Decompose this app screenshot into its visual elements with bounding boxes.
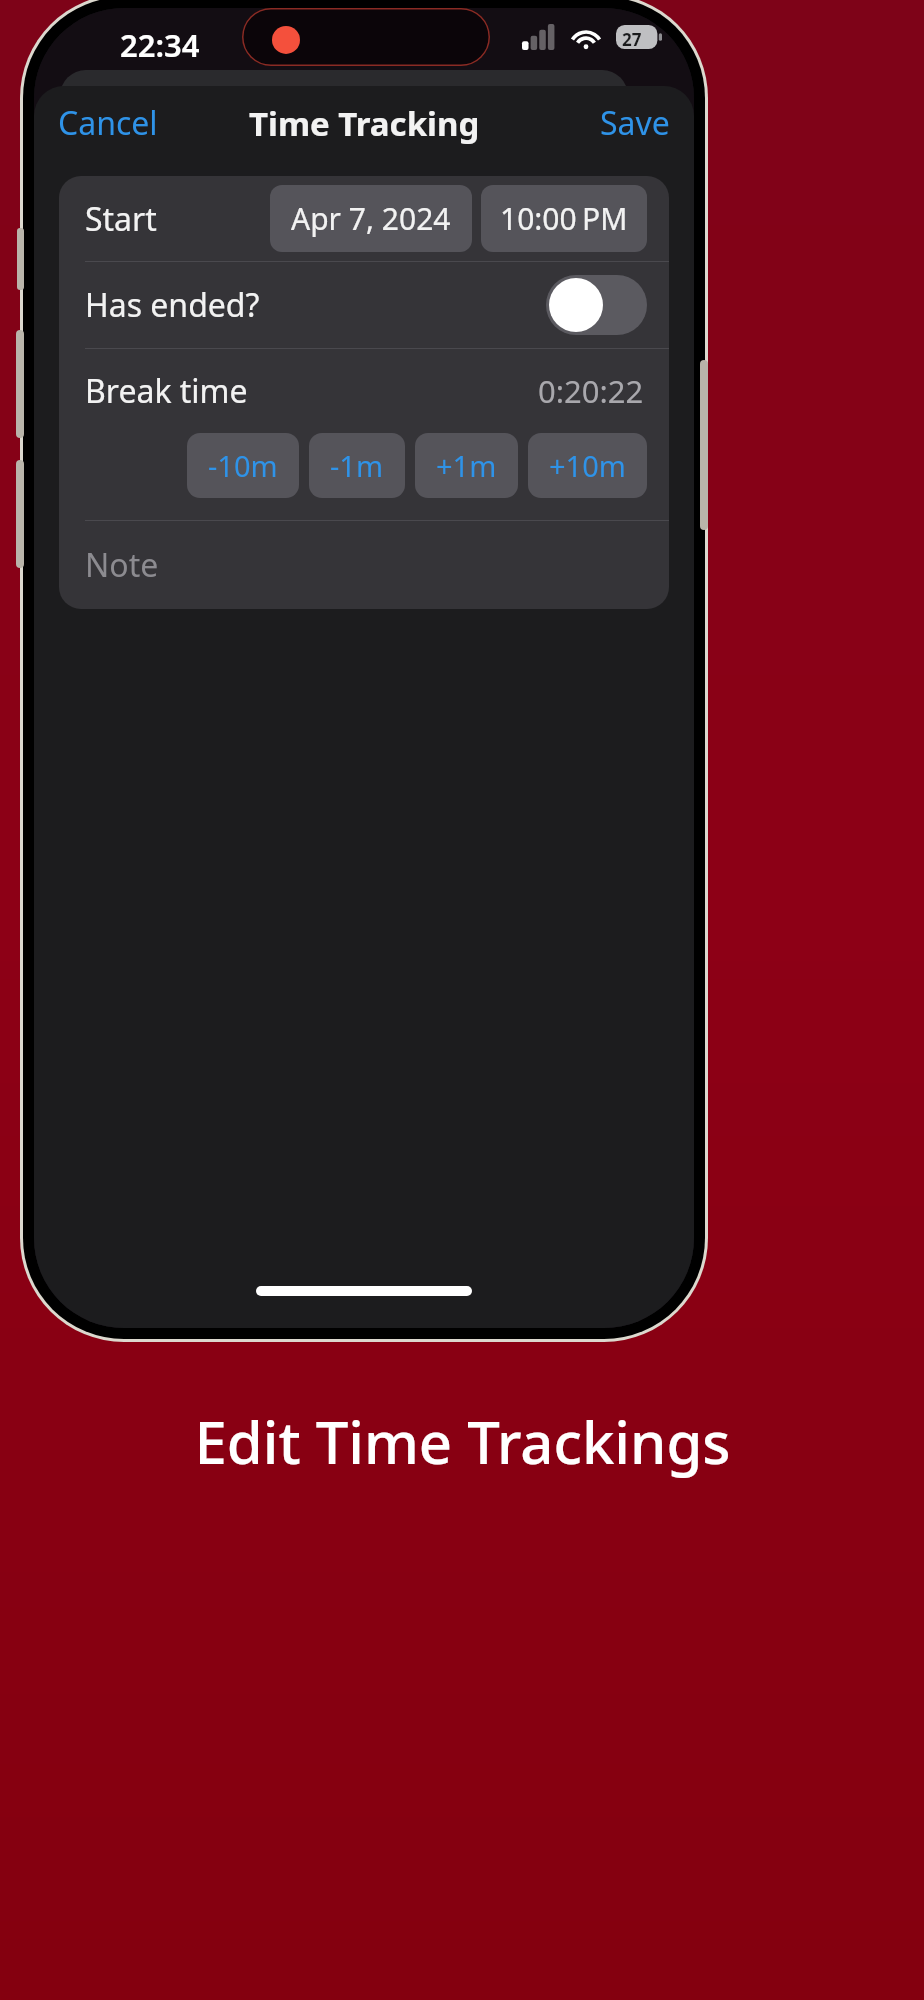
staticText: PM (582, 198, 628, 239)
button[interactable]: Apr 7, 2024 (270, 185, 472, 252)
staticText: +10m (549, 446, 626, 485)
staticText: 27 (622, 28, 642, 51)
staticText: Start (85, 197, 157, 241)
staticText: Cancel (58, 101, 158, 145)
button[interactable]: Cancel (34, 91, 182, 155)
button[interactable]: Save (576, 91, 694, 155)
staticText: Note (85, 543, 159, 587)
button[interactable]: 10:00 (481, 185, 647, 252)
button[interactable]: Note (59, 521, 669, 609)
button[interactable]: Has ended toggle (546, 275, 647, 335)
staticText: Time Tracking (249, 101, 480, 146)
staticText: 0:20:22 (538, 370, 644, 412)
staticText: Apr 7, 2024 (291, 198, 451, 239)
button[interactable]: +10m (528, 433, 647, 498)
staticText: 22:34 (120, 24, 200, 66)
staticText: -10m (208, 446, 278, 485)
staticText: +1m (436, 446, 497, 485)
staticText: Edit Time Trackings (194, 1402, 731, 1481)
button[interactable]: -10m (187, 433, 299, 498)
staticText: Has ended? (85, 283, 260, 327)
staticText: -1m (330, 446, 384, 485)
staticText: Break time (85, 369, 248, 413)
button[interactable]: +1m (415, 433, 518, 498)
staticText: 10:00 (500, 198, 577, 239)
button[interactable]: -1m (309, 433, 405, 498)
staticText: Save (600, 101, 670, 145)
